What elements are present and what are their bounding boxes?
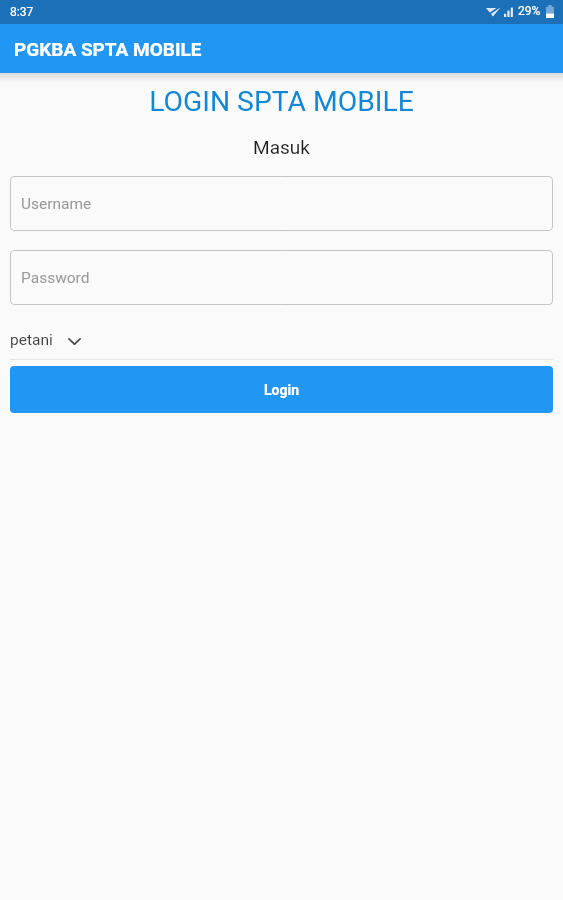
staticText: LOGIN SPTA MOBILE xyxy=(0,85,563,118)
staticText: Password xyxy=(21,269,90,287)
staticText: petani xyxy=(10,331,53,349)
staticText: Login xyxy=(264,382,300,398)
button[interactable]: PGKBA SPTA MOBILE xyxy=(0,24,563,73)
staticText: Masuk xyxy=(0,136,563,158)
other: Wi-Fi off xyxy=(486,6,500,17)
staticText: PGKBA SPTA MOBILE xyxy=(14,38,202,60)
other: Mobile signal xyxy=(504,6,514,17)
button[interactable]: Password xyxy=(10,250,553,305)
button[interactable]: Username xyxy=(10,176,553,231)
button[interactable]: petani xyxy=(10,331,553,360)
button[interactable]: Login xyxy=(10,366,553,413)
staticText: Username xyxy=(21,195,92,213)
other: Battery xyxy=(546,5,554,18)
staticText: 8:37 xyxy=(10,5,34,19)
other: Open dropdown xyxy=(68,338,81,345)
staticText: 29% xyxy=(518,4,541,18)
